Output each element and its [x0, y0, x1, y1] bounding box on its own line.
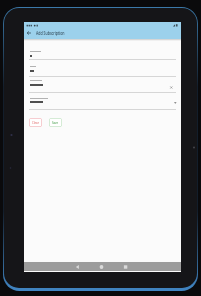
button[interactable]	[29, 64, 176, 75]
button[interactable]	[121, 263, 130, 271]
button[interactable]	[29, 95, 176, 108]
button[interactable]	[73, 263, 82, 271]
button[interactable]	[29, 48, 176, 59]
button[interactable]	[169, 85, 174, 90]
button[interactable]	[29, 78, 176, 91]
staticText: Clear	[32, 121, 39, 125]
button[interactable]	[25, 29, 33, 37]
button[interactable]	[97, 263, 106, 271]
staticText: Save	[52, 121, 59, 125]
button[interactable]: Save	[49, 118, 62, 127]
button[interactable]: Clear	[29, 118, 42, 127]
staticText: Add Subscription	[36, 30, 65, 36]
